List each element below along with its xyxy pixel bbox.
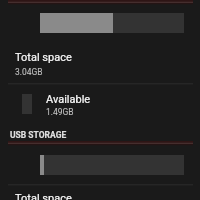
button[interactable]: Available — [0, 85, 200, 123]
staticText: USB STORAGE — [10, 130, 67, 140]
staticText: Available — [46, 93, 91, 106]
staticText: 3.04GB — [15, 67, 43, 77]
button[interactable]: Storage usage meter — [40, 155, 184, 175]
staticText: Total space — [15, 51, 72, 64]
staticText: Total space — [15, 192, 72, 200]
staticText: 1.49GB — [46, 107, 74, 117]
button[interactable]: Total space — [0, 186, 200, 200]
button[interactable]: Total space — [0, 41, 200, 83]
button[interactable]: Storage usage meter — [40, 13, 184, 33]
